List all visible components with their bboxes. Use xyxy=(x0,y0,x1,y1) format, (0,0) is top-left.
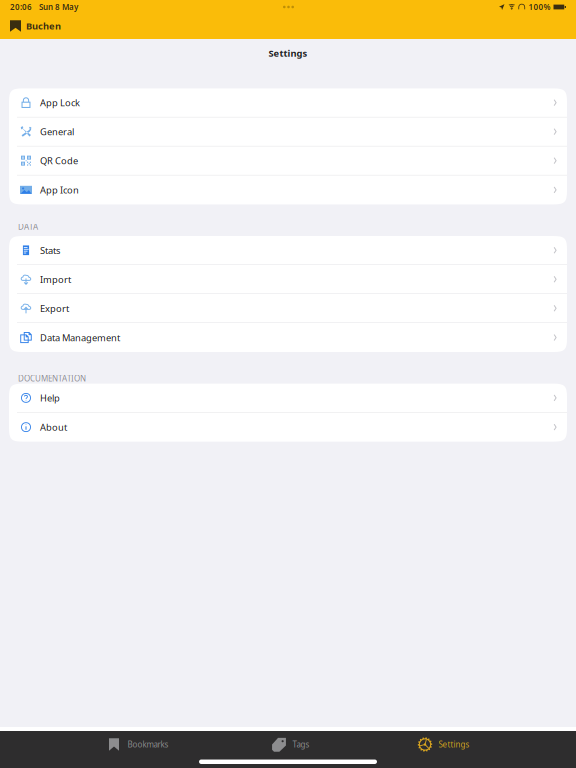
button[interactable]: App Lock xyxy=(9,88,567,117)
button[interactable]: Data Management xyxy=(9,323,567,352)
staticText: Settings xyxy=(268,47,307,59)
button[interactable]: App Icon xyxy=(9,175,567,204)
staticText: Stats xyxy=(40,244,60,256)
staticText: DATA xyxy=(18,221,38,232)
staticText: App Lock xyxy=(40,96,80,109)
staticText: 100% xyxy=(528,2,550,12)
button[interactable]: Help xyxy=(9,384,567,413)
button[interactable]: About xyxy=(9,413,567,442)
staticText: About xyxy=(40,421,67,433)
button[interactable]: Export xyxy=(9,294,567,323)
staticText: Data Management xyxy=(40,331,120,344)
staticText: Import xyxy=(40,273,71,285)
staticText: Tags xyxy=(292,739,309,750)
button[interactable]: General xyxy=(9,117,567,146)
staticText: Help xyxy=(40,392,60,404)
button[interactable]: Buchen xyxy=(0,13,71,38)
staticText: General xyxy=(40,125,74,138)
staticText: Bookmarks xyxy=(127,739,168,750)
staticText: QR Code xyxy=(40,154,78,167)
staticText: DOCUMENTATION xyxy=(18,373,86,384)
button[interactable]: Stats xyxy=(9,236,567,265)
button[interactable]: Bookmarks xyxy=(82,737,192,752)
button[interactable]: QR Code xyxy=(9,146,567,175)
button[interactable]: Import xyxy=(9,265,567,294)
button[interactable]: Tags xyxy=(235,737,345,752)
button[interactable]: Settings xyxy=(388,737,498,752)
staticText: App Icon xyxy=(40,184,79,196)
staticText: Sun 8 May xyxy=(39,2,78,12)
staticText: Settings xyxy=(438,739,469,750)
staticText: Buchen xyxy=(26,20,61,32)
staticText: Export xyxy=(40,302,69,314)
staticText: 20:06 xyxy=(10,2,32,12)
